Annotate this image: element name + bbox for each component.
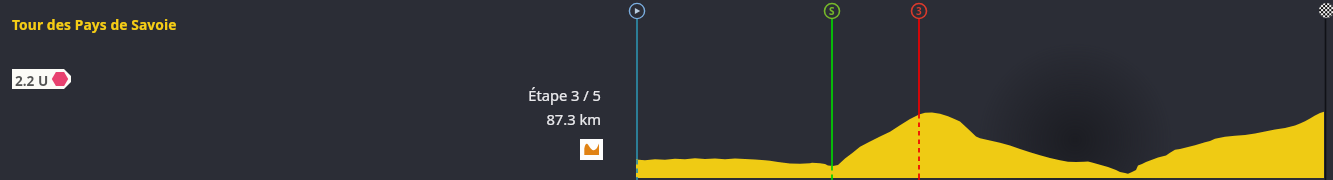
- staticText: 2.2 U: [15, 71, 49, 90]
- staticText: S: [829, 4, 835, 18]
- button[interactable]: 2.2 U: [12, 69, 71, 89]
- button[interactable]: Mountain category 3: [910, 2, 928, 20]
- button[interactable]: Finish: [1319, 3, 1333, 18]
- staticText: 3: [916, 4, 922, 18]
- button[interactable]: Start: [628, 2, 646, 20]
- staticText: Tour des Pays de Savoie: [12, 15, 177, 34]
- staticText: 87.3 km: [546, 109, 601, 129]
- button[interactable]: Sprint: [823, 2, 841, 20]
- button[interactable]: Stage profile: [580, 139, 603, 160]
- staticText: Étape 3 / 5: [528, 85, 601, 105]
